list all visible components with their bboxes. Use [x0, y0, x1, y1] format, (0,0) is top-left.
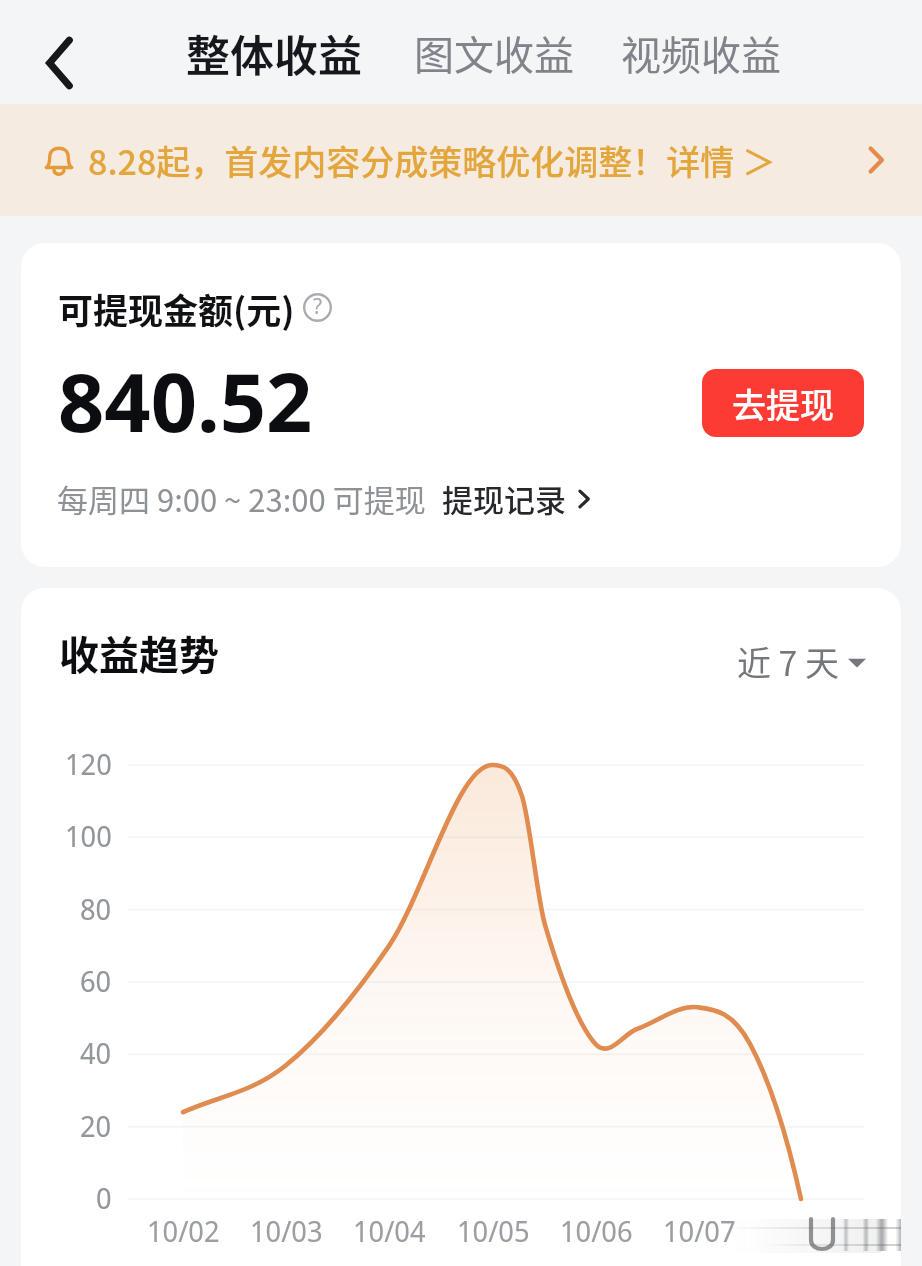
staticText: 收益趋势 — [59, 624, 219, 682]
button[interactable]: 近 7 天 — [737, 637, 866, 686]
button[interactable]: 去提现 — [702, 369, 864, 437]
button[interactable]: Back — [33, 36, 87, 90]
staticText: 120 — [65, 744, 112, 783]
button[interactable]: 图文收益 — [414, 24, 574, 82]
staticText: 10/05 — [457, 1211, 530, 1250]
staticText: 视频收益 — [621, 24, 781, 82]
button[interactable]: 整体收益 — [186, 21, 362, 85]
staticText: 每周四 9:00 ~ 23:00 可提现 — [57, 476, 426, 521]
staticText: 提现记录 — [442, 476, 566, 521]
button[interactable]: 8.28起，首发内容分成策略优化调整！详情 ＞ — [0, 104, 922, 216]
staticText: 40 — [80, 1033, 112, 1072]
staticText: 10/06 — [560, 1211, 633, 1250]
staticText: 10/04 — [353, 1211, 426, 1250]
staticText: ? — [313, 292, 323, 321]
staticText: 840.52 — [58, 345, 313, 455]
staticText: 8.28起，首发内容分成策略优化调整！详情 ＞ — [88, 136, 776, 185]
staticText: 10/02 — [147, 1211, 220, 1250]
staticText: 近 7 天 — [737, 637, 840, 686]
staticText: 80 — [80, 889, 112, 928]
staticText: 10/03 — [250, 1211, 323, 1250]
staticText: 0 — [96, 1178, 112, 1217]
staticText: 20 — [80, 1106, 112, 1145]
other: Open notice — [854, 138, 898, 182]
staticText: 10/07 — [663, 1211, 736, 1250]
staticText: 可提现金额(元) — [58, 283, 295, 334]
button[interactable]: 视频收益 — [621, 24, 781, 82]
staticText: 60 — [80, 961, 112, 1000]
staticText: 100 — [65, 816, 112, 855]
staticText: 图文收益 — [414, 24, 574, 82]
staticText: 去提现 — [732, 379, 834, 428]
button[interactable]: 提现记录 — [442, 476, 596, 521]
button[interactable]: Help — [303, 293, 332, 322]
staticText: 整体收益 — [186, 21, 362, 85]
